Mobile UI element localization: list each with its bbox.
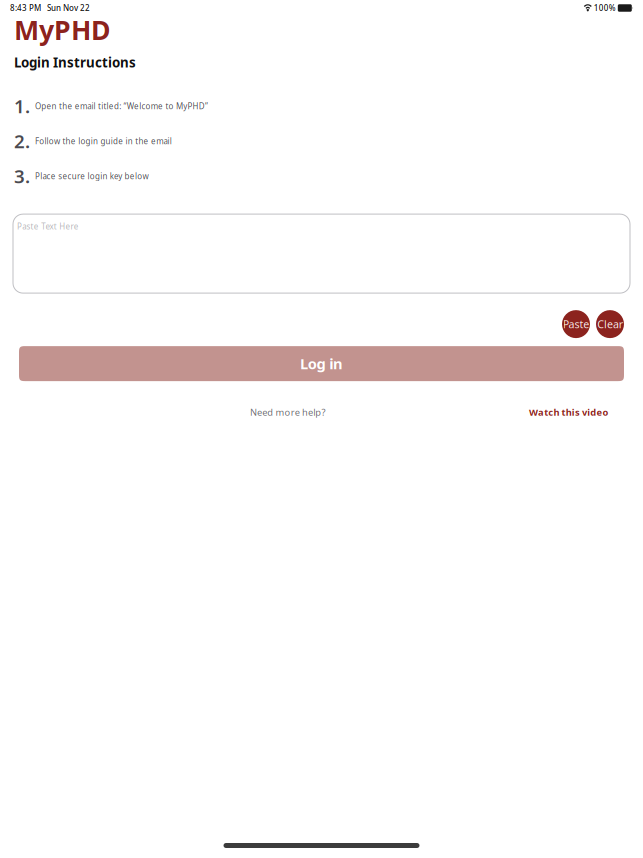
button[interactable]: Need more help? (250, 405, 330, 419)
staticText: MyPHD (14, 12, 111, 47)
staticText: Login Instructions (14, 53, 136, 71)
staticText: Place secure login key below (35, 171, 148, 181)
staticText: Follow the login guide in the email (35, 136, 172, 146)
staticText: 2. (14, 129, 30, 153)
staticText: Need more help? (250, 406, 325, 418)
button[interactable]: Clear (596, 310, 624, 338)
staticText: 3. (14, 164, 30, 188)
button[interactable]: Paste (562, 310, 590, 338)
staticText: Paste Text Here (17, 221, 79, 232)
staticText: Sun Nov 22 (41, 3, 90, 13)
staticText: 100% (592, 3, 618, 13)
staticText: Paste (563, 317, 589, 331)
staticText: 8:43 PM (10, 3, 41, 13)
staticText: Log in (300, 354, 343, 373)
staticText: Clear (597, 317, 623, 331)
button[interactable]: Log in (19, 346, 624, 381)
staticText: Watch this video (529, 406, 608, 418)
button[interactable]: Watch this video (529, 405, 613, 419)
staticText: Open the email titled: “Welcome to MyPHD… (35, 101, 208, 111)
staticText: 1. (14, 94, 30, 118)
